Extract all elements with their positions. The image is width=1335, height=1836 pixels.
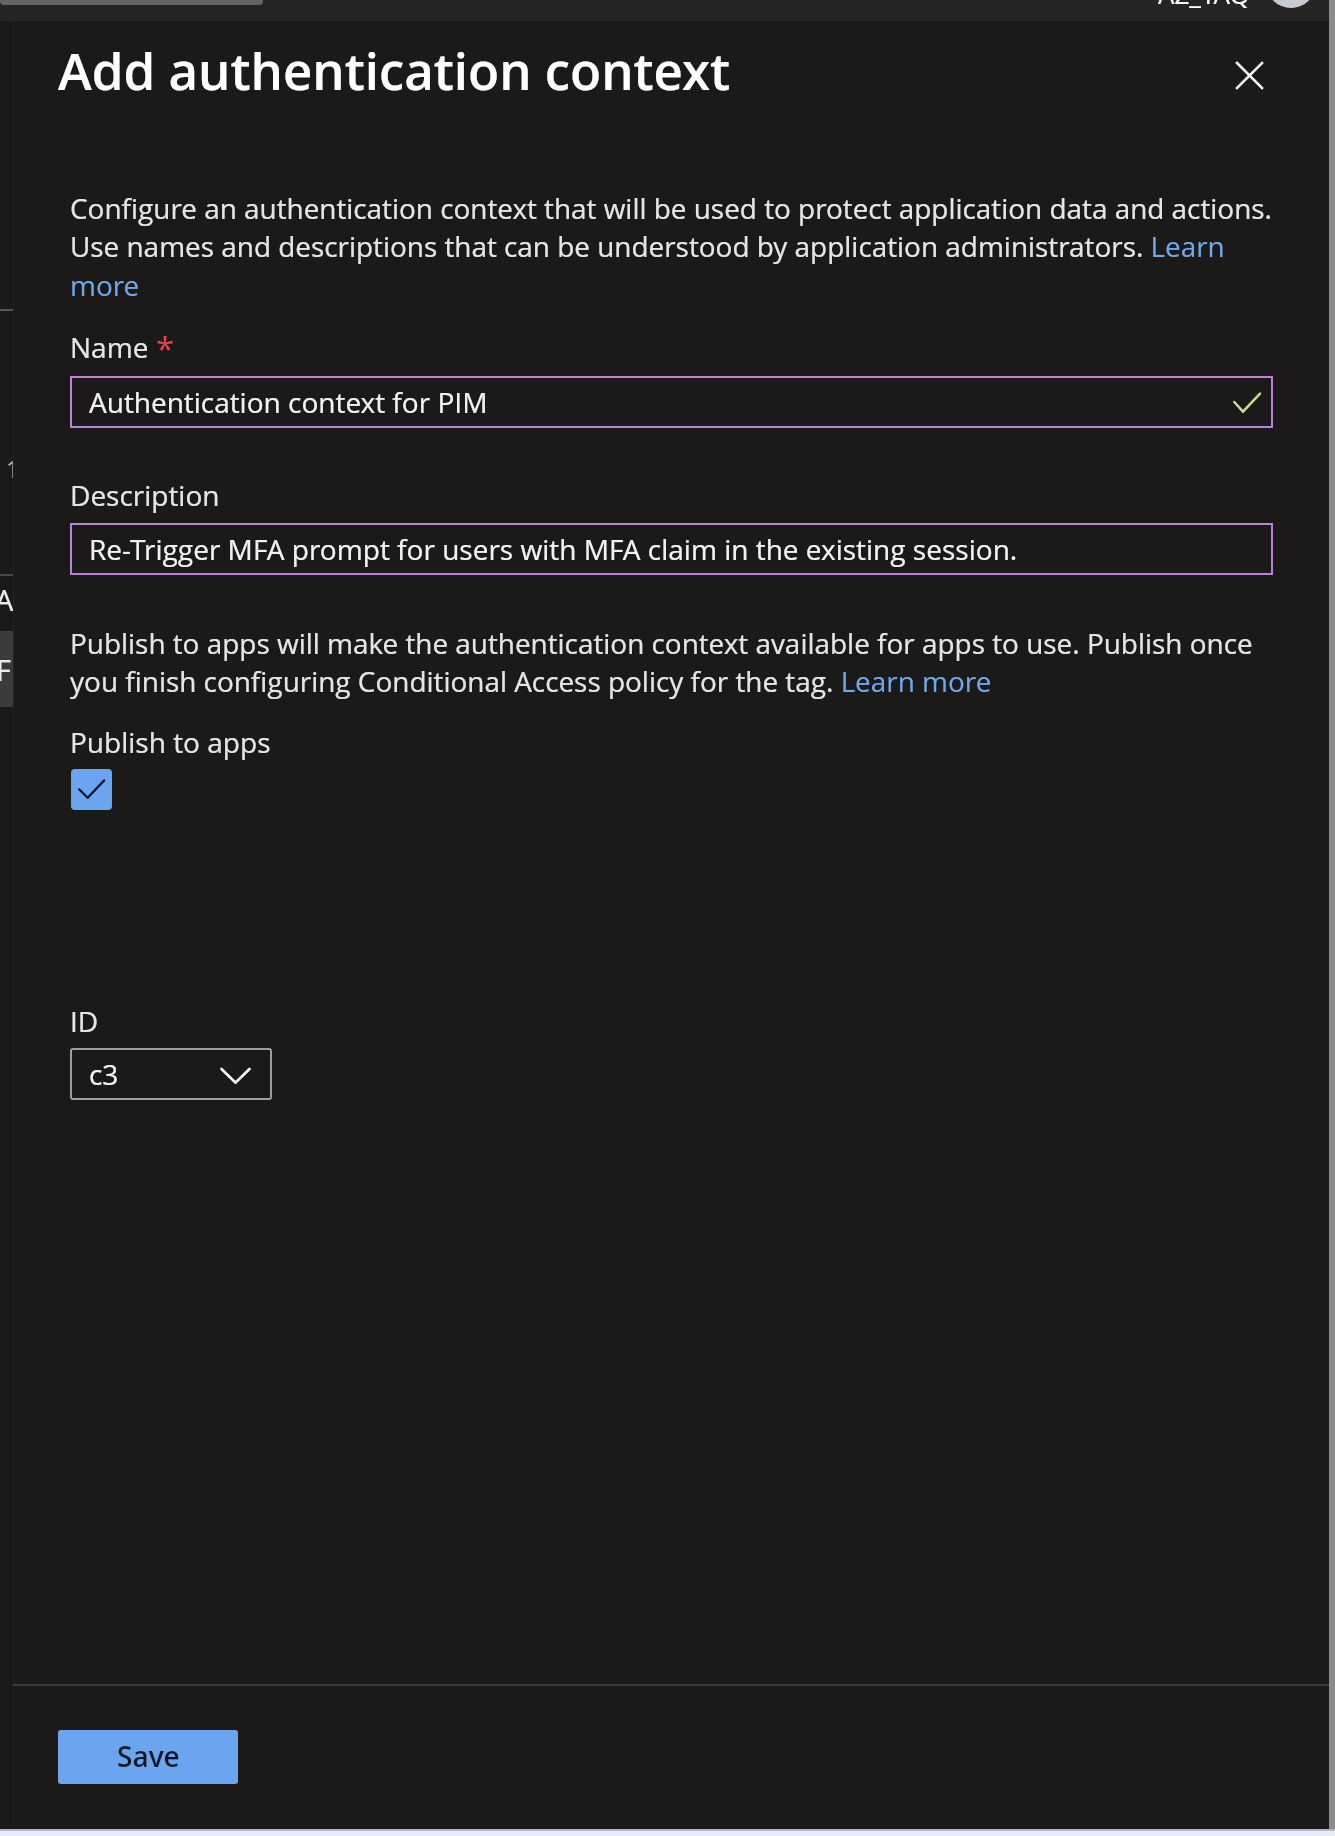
staticText: c3 <box>89 1055 119 1093</box>
staticText: Name <box>70 328 149 366</box>
staticText: Save <box>117 1737 180 1775</box>
staticText: * <box>156 326 175 371</box>
staticText: Publish to apps will make the authentica… <box>70 624 1260 700</box>
staticText: F <box>0 650 9 689</box>
staticText: Add authentication context <box>58 35 731 104</box>
staticText: Configure an authentication context that… <box>70 189 1280 304</box>
staticText: 1 <box>6 452 13 485</box>
button[interactable]: Authentication context for PIM <box>70 376 1273 428</box>
button[interactable]: c3 <box>70 1048 272 1100</box>
button[interactable]: Re-Trigger MFA prompt for users with MFA… <box>70 523 1273 575</box>
staticText: A <box>0 580 8 619</box>
button[interactable]: Publish to apps checkbox <box>71 769 112 810</box>
button[interactable]: Close <box>1217 43 1281 107</box>
staticText: Publish to apps <box>70 723 271 761</box>
button[interactable]: Save <box>58 1730 238 1784</box>
staticText: ID <box>70 1002 99 1040</box>
staticText: Authentication context for PIM <box>89 383 488 421</box>
staticText: Re-Trigger MFA prompt for users with MFA… <box>89 530 1018 568</box>
staticText: AZ_TAQ <box>1158 0 1250 11</box>
staticText: Description <box>70 476 220 514</box>
